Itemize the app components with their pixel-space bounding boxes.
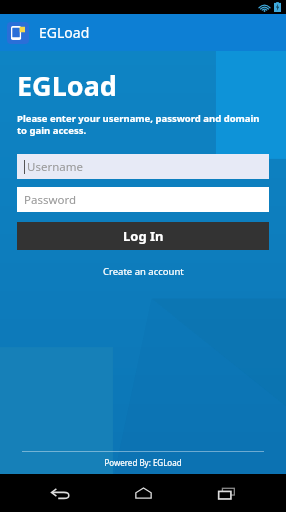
staticText: Create an account (103, 265, 184, 278)
button[interactable]: Back (37, 474, 83, 512)
button[interactable]: Create an account (95, 262, 192, 281)
button[interactable]: Username (17, 154, 269, 179)
button[interactable]: Recent apps (203, 474, 249, 512)
other: EGLoad app icon (7, 22, 29, 44)
staticText: Username (27, 159, 83, 175)
staticText: EGLoad (17, 67, 117, 104)
button[interactable]: Log In (17, 222, 269, 250)
button[interactable]: Password (17, 187, 269, 212)
staticText: Password (24, 192, 77, 208)
staticText: Please enter your username, password and… (17, 112, 272, 137)
staticText: EGLoad (39, 23, 90, 42)
staticText: Log In (123, 227, 164, 245)
staticText: Powered By: EGLoad (0, 457, 286, 468)
button[interactable]: Home (120, 474, 166, 512)
